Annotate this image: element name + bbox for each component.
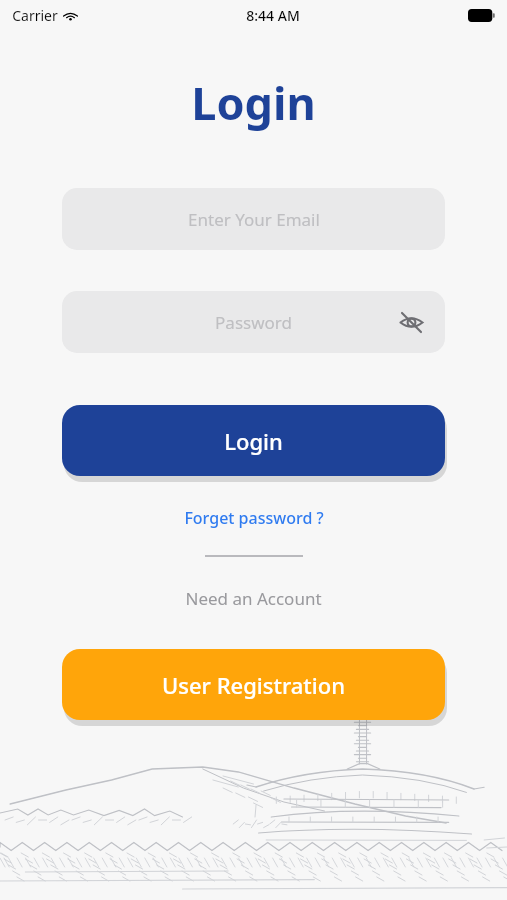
button[interactable]: User Registration (62, 649, 445, 720)
staticText: Login (224, 426, 283, 456)
staticText: Need an Account (185, 587, 322, 610)
button[interactable]: Login (62, 405, 445, 476)
staticText: Carrier (12, 6, 58, 25)
staticText: User Registration (162, 670, 345, 700)
staticText: Forget password ? (184, 507, 324, 529)
button[interactable]: Enter Your Email (62, 188, 445, 250)
button[interactable]: Password (62, 291, 445, 353)
staticText: 8:44 AM (246, 6, 300, 25)
button[interactable]: Forget password ? (176, 503, 332, 533)
staticText: Password (215, 311, 292, 334)
staticText: Login (191, 72, 316, 133)
staticText: Enter Your Email (188, 208, 320, 231)
button[interactable]: Show password (394, 305, 428, 339)
